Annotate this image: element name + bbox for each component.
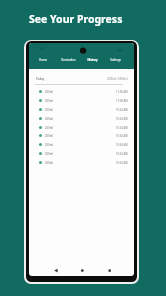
staticText: 10:34 AM: [116, 143, 128, 147]
staticText: 10:34 AM: [116, 152, 128, 156]
staticText: See Your Progress: [29, 12, 123, 26]
staticText: 10:34 AM: [116, 108, 128, 112]
button[interactable]: Home: [31, 58, 55, 69]
staticText: 250ml: [45, 90, 54, 94]
staticText: 2250ml / 2500ml: [107, 77, 128, 81]
button[interactable]: Reminders: [56, 58, 80, 69]
button[interactable]: 250ml: [29, 158, 134, 167]
button[interactable]: 250ml: [29, 87, 134, 96]
staticText: 10:34 AM: [116, 134, 128, 138]
staticText: 250ml: [45, 143, 54, 147]
button[interactable]: 250ml: [29, 140, 134, 149]
staticText: 10:34 AM: [116, 161, 128, 165]
staticText: 11:36 AM: [116, 90, 128, 94]
button[interactable]: 250ml: [29, 114, 134, 123]
staticText: 11:36: [37, 47, 44, 51]
staticText: 250ml: [45, 126, 54, 130]
other: System navigation: [29, 266, 134, 276]
staticText: 10:34 AM: [116, 117, 128, 121]
button[interactable]: 250ml: [29, 96, 134, 105]
staticText: 11:08 AM: [116, 99, 128, 103]
button[interactable]: History: [80, 58, 104, 69]
staticText: 250ml: [45, 108, 54, 112]
staticText: 250ml: [45, 152, 54, 156]
staticText: 250ml: [45, 117, 54, 121]
button[interactable]: 250ml: [29, 131, 134, 140]
button[interactable]: 250ml: [29, 105, 134, 114]
staticText: Home: [39, 58, 47, 62]
staticText: 10:34 AM: [116, 126, 128, 130]
staticText: 250ml: [45, 134, 54, 138]
staticText: 250ml: [45, 161, 54, 165]
staticText: Settings: [110, 58, 121, 62]
staticText: Today: [36, 77, 45, 81]
button[interactable]: 250ml: [29, 149, 134, 158]
staticText: 250ml: [45, 99, 54, 103]
staticText: Reminders: [61, 58, 76, 62]
staticText: History: [87, 58, 98, 62]
button[interactable]: 250ml: [29, 123, 134, 132]
staticText: ▾ ▲ ▌: [117, 48, 124, 51]
button[interactable]: Settings: [103, 58, 127, 69]
